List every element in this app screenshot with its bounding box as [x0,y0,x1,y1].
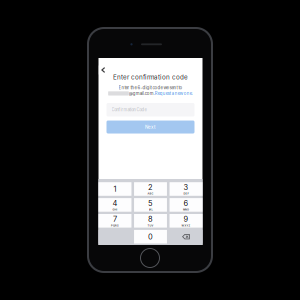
button[interactable]: Delete [170,230,202,243]
button[interactable]: 8 [134,214,167,228]
staticText: 6 [183,199,188,208]
staticText: TUV [147,224,153,227]
button[interactable]: 7 [99,214,131,228]
button[interactable]: 4 [99,198,131,212]
staticText: 4 [112,199,117,208]
staticText: Next [145,124,156,130]
staticText: DEF [183,192,188,195]
staticText: 3 [183,183,188,192]
button[interactable]: Next [106,120,194,133]
button[interactable]: 1 [99,182,131,196]
button[interactable]: 3 [170,182,202,196]
staticText: ABC [147,192,153,195]
button[interactable]: 5 [134,198,167,212]
staticText: Request a new one. [155,91,193,96]
staticText: GHI [112,208,117,211]
staticText: 7 [113,215,117,224]
staticText: @gmail.com. [129,91,155,96]
button[interactable]: 2 [134,182,167,196]
staticText: Enter confirmation code [113,73,188,81]
staticText: Enter the 6-digit code we sent to [118,85,182,90]
staticText: JKL [148,208,152,211]
staticText: WXYZ [181,224,190,227]
staticText: 9 [183,215,188,224]
staticText: MNO [183,208,189,211]
button[interactable]: 0 [134,230,167,243]
staticText: 1 [113,184,116,193]
staticText: 5 [148,199,153,208]
staticText: Confirmation Code [111,107,146,112]
button[interactable]: 9 [170,214,202,228]
staticText: 8 [148,215,153,224]
staticText: 0 [148,232,153,241]
staticText: 2 [148,183,153,192]
button[interactable]: Back [99,65,108,74]
button[interactable]: 6 [170,198,202,212]
staticText: PQRS [111,224,119,227]
